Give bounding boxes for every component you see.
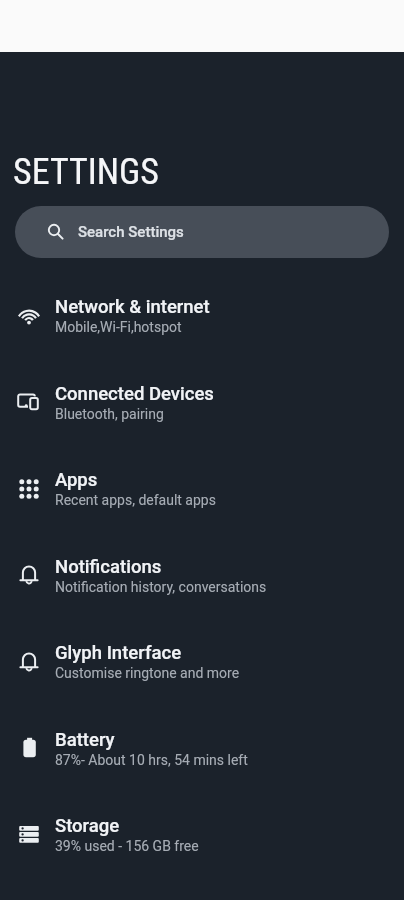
staticText: Mobile,Wi-Fi,hotspot [55, 319, 182, 335]
staticText: Recent apps, default apps [55, 492, 216, 508]
button[interactable]: Connected Devices [0, 359, 404, 445]
staticText: 87%- About 10 hrs, 54 mins left [55, 752, 248, 768]
staticText: Connected Devices [55, 383, 214, 405]
button[interactable]: Notifications [0, 532, 404, 618]
staticText: Notification history, conversations [55, 579, 267, 595]
staticText: Notifications [55, 556, 162, 578]
button[interactable]: Battery [0, 705, 404, 791]
staticText: Network & internet [55, 296, 210, 318]
staticText: SETTINGS [13, 151, 159, 193]
staticText: Search Settings [78, 223, 184, 241]
button[interactable]: Storage [0, 791, 404, 878]
button[interactable]: Search Settings [15, 206, 389, 258]
staticText: Customise ringtone and more [55, 665, 240, 681]
staticText: Glyph Interface [55, 642, 182, 664]
staticText: Bluetooth, pairing [55, 406, 164, 422]
staticText: 39% used - 156 GB free [55, 838, 199, 854]
staticText: Storage [55, 815, 120, 837]
button[interactable]: Network & internet [0, 272, 404, 359]
staticText: Apps [55, 469, 98, 491]
button[interactable]: Glyph Interface [0, 618, 404, 705]
button[interactable]: Apps [0, 445, 404, 532]
staticText: Battery [55, 729, 115, 751]
